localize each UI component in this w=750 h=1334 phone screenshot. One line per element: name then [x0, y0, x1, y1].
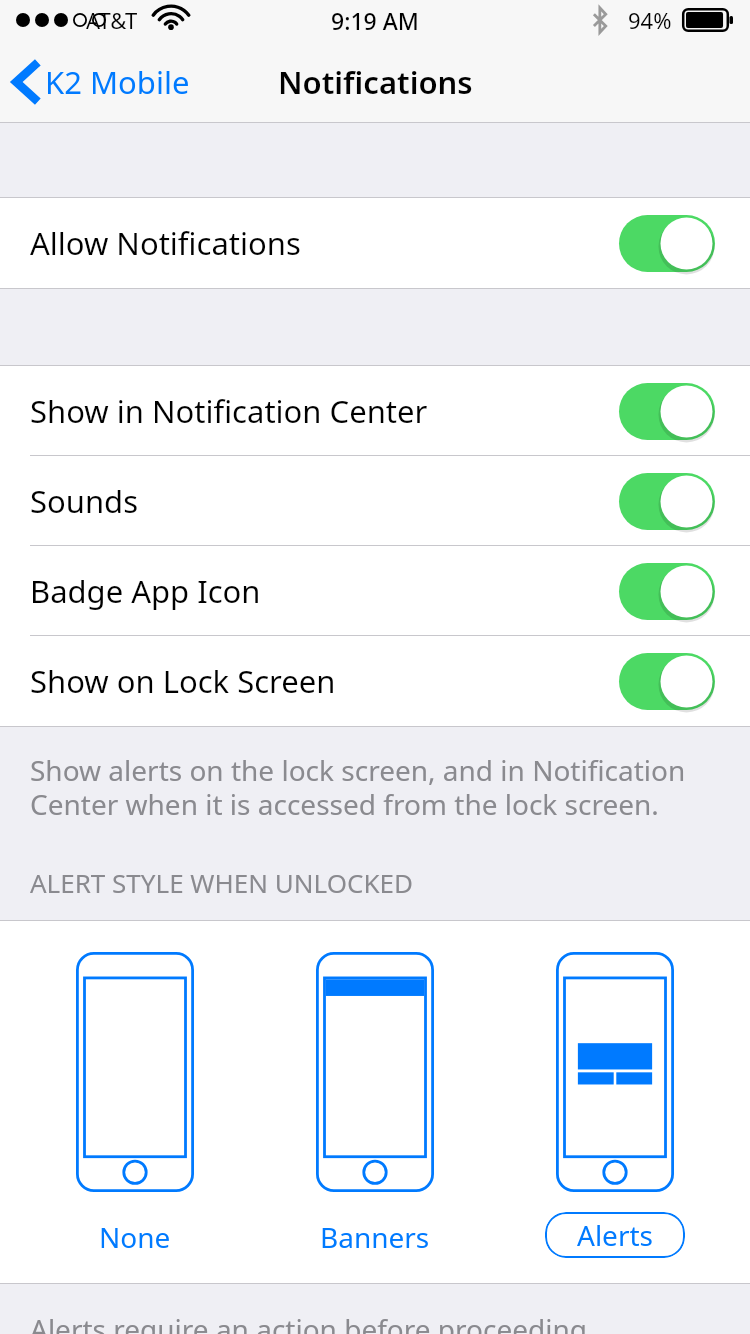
button[interactable]: Toggle [619, 473, 715, 530]
button[interactable]: Back [0, 49, 200, 115]
button[interactable]: Show on Lock Screen [0, 636, 750, 726]
staticText: Alerts require an action before proceedi… [30, 1310, 728, 1334]
staticText: K2 Mobile [45, 61, 190, 103]
staticText: Alerts [577, 1216, 653, 1254]
staticText: Allow Notifications [30, 222, 301, 264]
staticText: Show alerts on the lock screen, and in N… [30, 751, 686, 823]
button[interactable]: Sounds [0, 456, 750, 546]
button[interactable]: Banners [270, 952, 480, 1262]
button[interactable]: Toggle [619, 383, 715, 440]
staticText: AT&T [86, 5, 138, 35]
staticText: 94% [628, 5, 672, 35]
button[interactable]: Allow Notifications [0, 198, 750, 288]
button[interactable]: None [30, 952, 240, 1262]
staticText: Badge App Icon [30, 570, 261, 612]
button[interactable]: Show in Notification Center [0, 366, 750, 456]
button[interactable]: Toggle [619, 215, 715, 272]
staticText: Show in Notification Center [30, 390, 428, 432]
staticText: Sounds [30, 480, 139, 522]
button[interactable]: Alerts [510, 952, 720, 1258]
button[interactable]: Toggle [619, 653, 715, 710]
staticText: Banners [320, 1218, 430, 1256]
button[interactable]: Badge App Icon [0, 546, 750, 636]
staticText: 9:19 AM [331, 5, 419, 36]
other: Back [14, 62, 36, 102]
staticText: ALERT STYLE WHEN UNLOCKED [30, 865, 413, 900]
button[interactable]: Toggle [619, 563, 715, 620]
staticText: Notifications [278, 61, 473, 103]
staticText: Show on Lock Screen [30, 660, 336, 702]
staticText: None [99, 1218, 171, 1256]
